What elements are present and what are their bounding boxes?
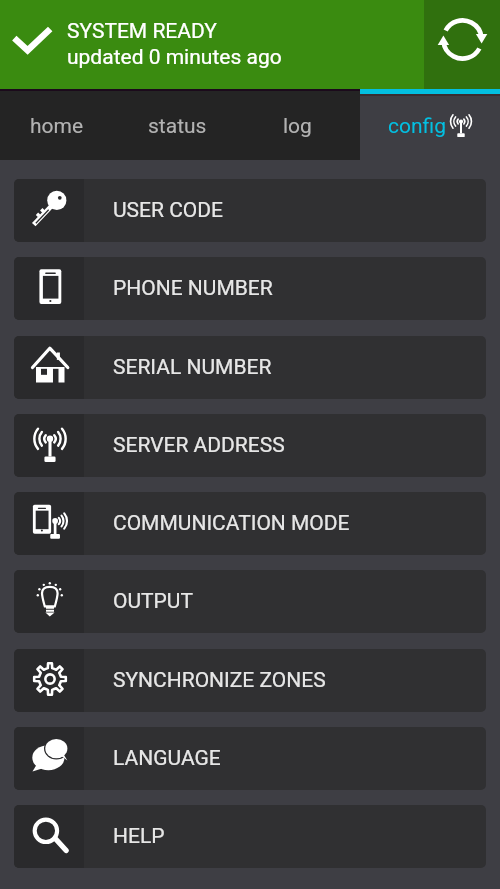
button[interactable]: USER CODE	[14, 179, 486, 242]
button[interactable]: SERVER ADDRESS	[14, 414, 486, 477]
button[interactable]: config	[360, 89, 500, 160]
staticText: home	[30, 114, 84, 139]
staticText: SERIAL NUMBER	[113, 355, 272, 380]
staticText: USER CODE	[113, 198, 224, 223]
button[interactable]: HELP	[14, 805, 486, 868]
button[interactable]: SYSTEM READY	[0, 0, 424, 89]
staticText: PHONE NUMBER	[113, 276, 273, 301]
staticText: SERVER ADDRESS	[113, 433, 285, 458]
staticText: updated 0 minutes ago	[67, 45, 282, 70]
staticText: status	[148, 114, 207, 139]
button[interactable]: PHONE NUMBER	[14, 257, 486, 320]
button[interactable]: home	[0, 89, 120, 160]
button[interactable]: log	[240, 89, 360, 160]
staticText: SYSTEM READY	[67, 19, 217, 44]
staticText: COMMUNICATION MODE	[113, 511, 350, 536]
button[interactable]: Refresh	[424, 0, 500, 89]
button[interactable]: status	[120, 89, 240, 160]
button[interactable]: SYNCHRONIZE ZONES	[14, 649, 486, 712]
staticText: OUTPUT	[113, 589, 193, 614]
staticText: HELP	[113, 824, 165, 849]
button[interactable]: OUTPUT	[14, 570, 486, 633]
staticText: config	[388, 114, 446, 139]
button[interactable]: COMMUNICATION MODE	[14, 492, 486, 555]
button[interactable]: LANGUAGE	[14, 727, 486, 790]
staticText: log	[283, 114, 312, 139]
button[interactable]: SERIAL NUMBER	[14, 336, 486, 399]
staticText: SYNCHRONIZE ZONES	[113, 668, 326, 693]
staticText: LANGUAGE	[113, 746, 221, 771]
